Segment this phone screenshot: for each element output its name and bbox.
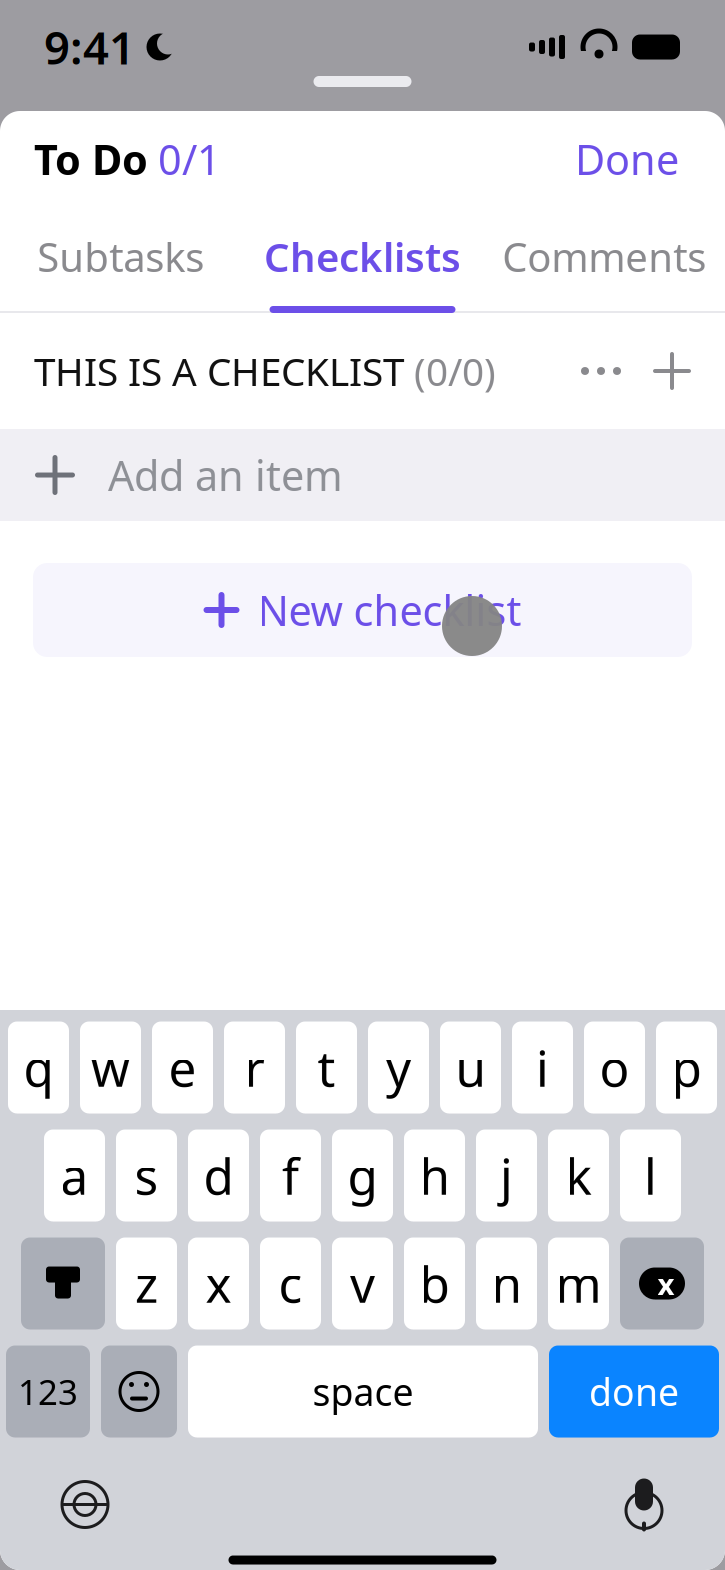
button[interactable]: a [44, 1129, 105, 1221]
staticText: 0/1 [158, 132, 221, 186]
button[interactable]: Emoji [101, 1345, 177, 1437]
button[interactable]: New checklist [0, 563, 725, 657]
staticText: s [134, 1143, 158, 1208]
staticText: Comments [502, 230, 706, 283]
button[interactable]: m [548, 1237, 609, 1329]
button[interactable]: space [188, 1345, 538, 1437]
staticText: space [312, 1367, 413, 1416]
staticText: o [599, 1035, 629, 1100]
staticText: THIS IS A CHECKLIST [34, 345, 404, 397]
button[interactable]: More options [563, 345, 639, 397]
button[interactable]: x [188, 1237, 249, 1329]
staticText: done [589, 1367, 679, 1416]
staticText: g [347, 1143, 377, 1208]
button[interactable]: v [332, 1237, 393, 1329]
button[interactable]: w [80, 1021, 141, 1113]
staticText: Done [575, 132, 679, 186]
button[interactable]: i [512, 1021, 573, 1113]
staticText: v [350, 1251, 375, 1316]
button[interactable]: n [476, 1237, 537, 1329]
staticText: x [205, 1251, 231, 1316]
button[interactable]: k [548, 1129, 609, 1221]
button[interactable]: Add an item [0, 429, 725, 521]
button[interactable]: Checklists [242, 207, 483, 313]
staticText: y [386, 1035, 411, 1100]
button[interactable]: Change keyboard [44, 1463, 126, 1545]
staticText: l [644, 1143, 657, 1208]
staticText: d [203, 1143, 233, 1208]
button[interactable]: g [332, 1129, 393, 1221]
staticText: Add an item [108, 448, 343, 502]
staticText: r [244, 1035, 264, 1100]
button[interactable]: z [116, 1237, 177, 1329]
staticText: New checklist [257, 583, 521, 637]
staticText: u [455, 1035, 485, 1100]
button[interactable]: Delete [620, 1237, 704, 1329]
button[interactable]: s [116, 1129, 177, 1221]
button[interactable]: o [584, 1021, 645, 1113]
button[interactable]: r [224, 1021, 285, 1113]
button[interactable]: t [296, 1021, 357, 1113]
staticText: a [60, 1143, 88, 1208]
staticText: h [419, 1143, 449, 1208]
button[interactable]: c [260, 1237, 321, 1329]
button[interactable]: Comments [483, 207, 725, 313]
button[interactable]: u [440, 1021, 501, 1113]
button[interactable]: d [188, 1129, 249, 1221]
button[interactable]: h [404, 1129, 465, 1221]
staticText: 123 [18, 1368, 78, 1414]
staticText: c [278, 1251, 302, 1316]
staticText: m [555, 1251, 601, 1316]
staticText: e [168, 1035, 196, 1100]
button[interactable]: p [656, 1021, 717, 1113]
staticText: z [135, 1251, 158, 1316]
staticText: 9:41 [44, 17, 135, 77]
staticText: To Do [34, 132, 148, 186]
staticText: p [671, 1035, 701, 1100]
button[interactable]: j [476, 1129, 537, 1221]
button[interactable]: 123 [6, 1345, 90, 1437]
staticText: Checklists [264, 230, 461, 283]
button[interactable]: Done [563, 122, 691, 196]
staticText: b [419, 1251, 449, 1316]
staticText: (0/0) [414, 345, 496, 397]
staticText: k [565, 1143, 591, 1208]
staticText: j [500, 1143, 513, 1208]
button[interactable]: y [368, 1021, 429, 1113]
staticText: t [317, 1035, 335, 1100]
button[interactable]: Add item to checklist [639, 338, 705, 404]
button[interactable]: f [260, 1129, 321, 1221]
button[interactable]: l [620, 1129, 681, 1221]
button[interactable]: b [404, 1237, 465, 1329]
staticText: w [91, 1035, 130, 1100]
button[interactable]: Dictation [607, 1461, 681, 1547]
button[interactable]: q [8, 1021, 69, 1113]
button[interactable]: e [152, 1021, 213, 1113]
staticText: q [23, 1035, 53, 1100]
staticText: Subtasks [37, 230, 204, 283]
button[interactable]: Shift [21, 1237, 105, 1329]
button[interactable]: done [549, 1345, 719, 1437]
staticText: x [657, 1264, 674, 1303]
staticText: n [491, 1251, 521, 1316]
button[interactable]: Subtasks [0, 207, 242, 313]
staticText: i [536, 1035, 549, 1100]
staticText: f [282, 1143, 299, 1208]
